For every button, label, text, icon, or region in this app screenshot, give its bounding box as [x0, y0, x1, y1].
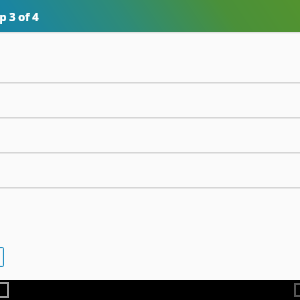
- button[interactable]: Recent apps: [0, 283, 8, 297]
- button[interactable]: [0, 154, 300, 189]
- button[interactable]: Continue: [0, 247, 4, 267]
- button[interactable]: [0, 34, 300, 84]
- button[interactable]: [0, 84, 300, 119]
- button[interactable]: Menu: [295, 284, 300, 296]
- staticText: Step 3 of 4: [0, 9, 39, 24]
- button[interactable]: [0, 119, 300, 154]
- button[interactable]: Step 3 of 4: [0, 0, 300, 32]
